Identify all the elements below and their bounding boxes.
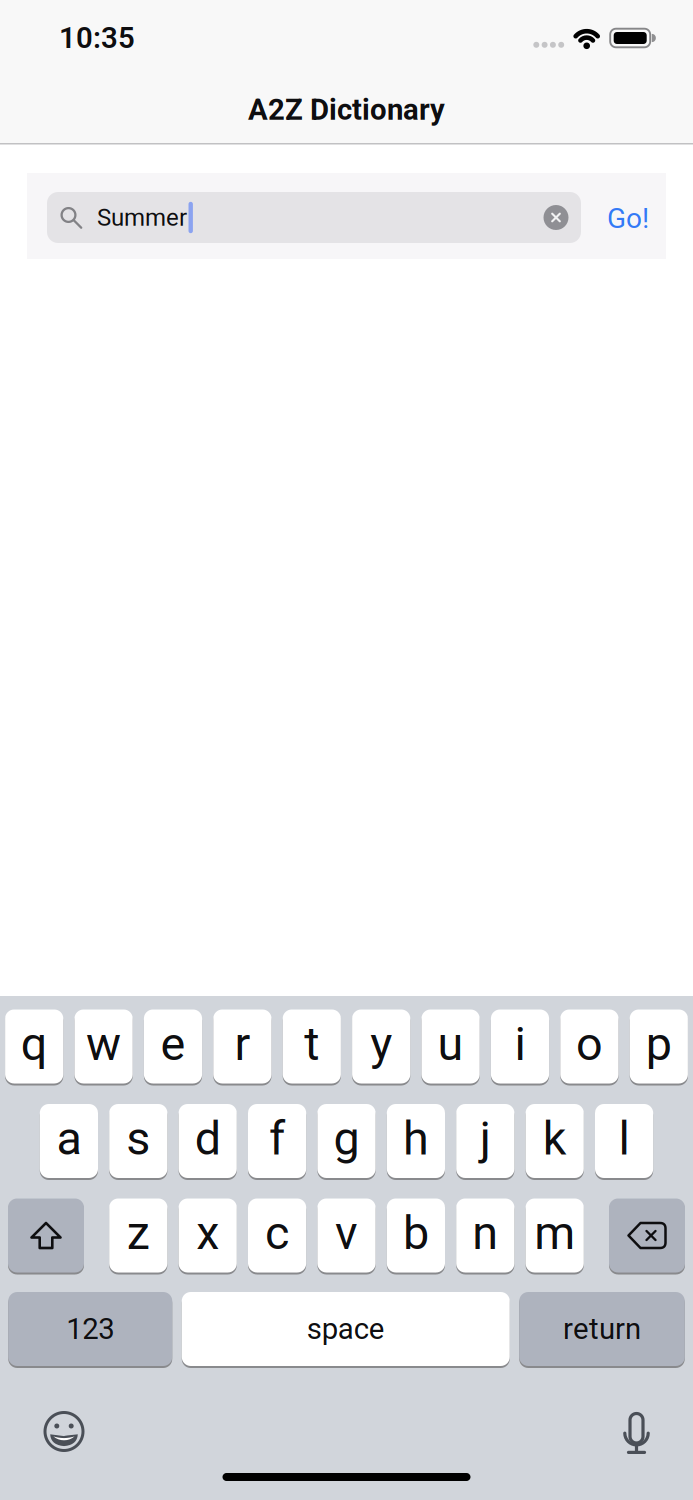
- staticText: j: [480, 1112, 491, 1165]
- button[interactable]: g: [317, 1103, 376, 1179]
- button[interactable]: v: [317, 1197, 376, 1273]
- button[interactable]: i: [491, 1008, 549, 1084]
- staticText: x: [196, 1206, 219, 1260]
- button[interactable]: o: [560, 1008, 618, 1084]
- staticText: l: [619, 1112, 630, 1165]
- button[interactable]: y: [352, 1008, 410, 1084]
- button[interactable]: q: [5, 1008, 63, 1084]
- button[interactable]: a: [40, 1103, 98, 1179]
- button[interactable]: c: [248, 1197, 306, 1273]
- staticText: r: [234, 1017, 250, 1071]
- button[interactable]: Dictation: [624, 1413, 648, 1455]
- staticText: m: [534, 1206, 575, 1260]
- staticText: v: [335, 1206, 358, 1260]
- button[interactable]: x: [179, 1197, 237, 1273]
- staticText: g: [333, 1112, 359, 1165]
- button[interactable]: Shift: [8, 1197, 84, 1273]
- staticText: d: [195, 1112, 221, 1165]
- staticText: p: [646, 1017, 672, 1071]
- staticText: space: [307, 1312, 385, 1346]
- staticText: e: [160, 1017, 185, 1071]
- button[interactable]: d: [179, 1103, 237, 1179]
- button[interactable]: Emoji: [44, 1414, 84, 1454]
- staticText: a: [56, 1112, 81, 1165]
- button[interactable]: j: [456, 1103, 514, 1179]
- button[interactable]: 123: [8, 1291, 172, 1367]
- button[interactable]: r: [213, 1008, 271, 1084]
- button[interactable]: s: [109, 1103, 167, 1179]
- button[interactable]: Delete: [609, 1197, 685, 1273]
- button[interactable]: k: [526, 1103, 584, 1179]
- staticText: return: [563, 1312, 641, 1346]
- staticText: k: [543, 1112, 567, 1165]
- button[interactable]: l: [595, 1103, 653, 1179]
- staticText: Go!: [607, 202, 649, 234]
- staticText: A2Z Dictionary: [248, 93, 445, 126]
- button[interactable]: z: [109, 1197, 167, 1273]
- button[interactable]: p: [630, 1008, 688, 1084]
- staticText: n: [472, 1206, 498, 1260]
- staticText: Summer: [97, 204, 187, 231]
- staticText: q: [21, 1017, 48, 1071]
- staticText: w: [86, 1017, 121, 1071]
- staticText: c: [265, 1206, 289, 1260]
- button[interactable]: Clear text: [543, 205, 568, 230]
- button[interactable]: n: [456, 1197, 514, 1273]
- staticText: s: [126, 1112, 150, 1165]
- button[interactable]: m: [526, 1197, 584, 1273]
- staticText: i: [514, 1017, 525, 1071]
- staticText: o: [576, 1017, 603, 1071]
- button[interactable]: h: [387, 1103, 445, 1179]
- staticText: b: [403, 1206, 429, 1260]
- staticText: u: [438, 1017, 464, 1071]
- button[interactable]: t: [283, 1008, 341, 1084]
- button[interactable]: w: [74, 1008, 133, 1084]
- button[interactable]: space: [182, 1291, 510, 1367]
- button[interactable]: return: [519, 1291, 685, 1367]
- button[interactable]: u: [421, 1008, 480, 1084]
- staticText: 123: [66, 1312, 114, 1346]
- staticText: h: [403, 1112, 429, 1165]
- button[interactable]: Go!: [607, 200, 649, 232]
- staticText: f: [269, 1112, 285, 1165]
- staticText: t: [304, 1017, 319, 1071]
- button[interactable]: Search field: [27, 173, 666, 259]
- button[interactable]: f: [248, 1103, 306, 1179]
- button[interactable]: e: [144, 1008, 202, 1084]
- staticText: z: [127, 1206, 150, 1260]
- button[interactable]: b: [387, 1197, 445, 1273]
- staticText: y: [370, 1017, 392, 1071]
- staticText: 10:35: [59, 21, 135, 55]
